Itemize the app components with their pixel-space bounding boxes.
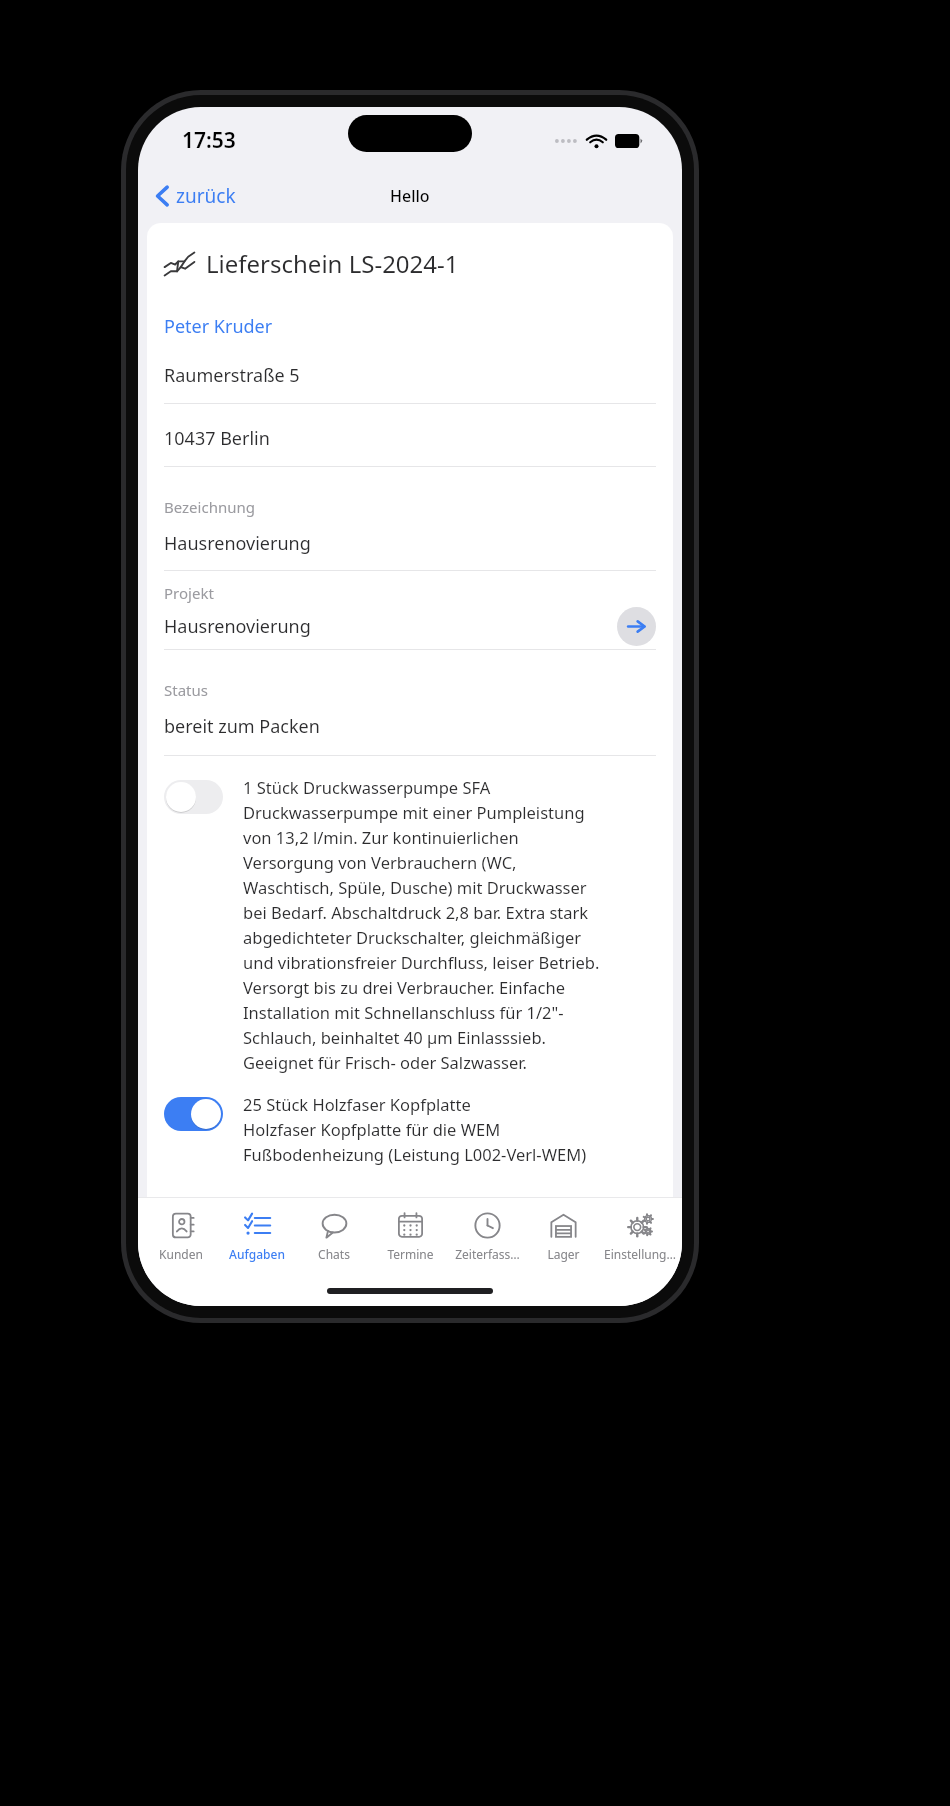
button[interactable]: zurück [148,178,244,214]
staticText: Status [164,680,208,700]
staticText: Lieferschein LS-2024-1 [206,247,459,280]
staticText: 25 Stück Holzfaser Kopfplatte Holzfaser … [243,1093,587,1165]
button[interactable]: Chats [296,1208,372,1266]
staticText: Projekt [164,583,214,603]
other: Aktiviert [164,1097,223,1131]
button[interactable]: Kunden [143,1208,219,1266]
staticText: Kunden [159,1246,203,1262]
staticText: Chats [318,1246,350,1262]
staticText: Lager [547,1246,580,1262]
staticText: 17:53 [182,126,236,155]
staticText: 1 Stück Druckwasserpumpe SFA Druckwasser… [243,776,600,1073]
staticText: Hello [390,185,430,207]
staticText: bereit zum Packen [164,714,320,739]
staticText: Einstellung… [604,1246,676,1262]
button[interactable]: Aktiviert [164,1093,656,1165]
staticText: Bezeichnung [164,497,255,517]
other: Deaktiviert [164,780,223,814]
staticText: 10437 Berlin [164,426,270,451]
button[interactable]: Zeiterfass… [449,1208,525,1266]
button[interactable]: Projekt öffnen [617,607,656,646]
staticText: Termine [387,1246,434,1262]
staticText: zurück [176,183,236,209]
button[interactable]: Deaktiviert [164,776,656,1073]
staticText: Zeiterfass… [455,1246,520,1262]
button[interactable]: Aufgaben [219,1208,295,1266]
staticText: Aufgaben [229,1246,285,1262]
button[interactable]: Einstellung… [602,1208,678,1266]
button[interactable]: Lager [525,1208,601,1266]
staticText: Hausrenovierung [164,614,311,639]
button[interactable]: Peter Kruder [164,314,273,339]
staticText: Hausrenovierung [164,531,311,556]
button[interactable]: Termine [372,1208,448,1266]
staticText: Raumerstraße 5 [164,363,300,388]
